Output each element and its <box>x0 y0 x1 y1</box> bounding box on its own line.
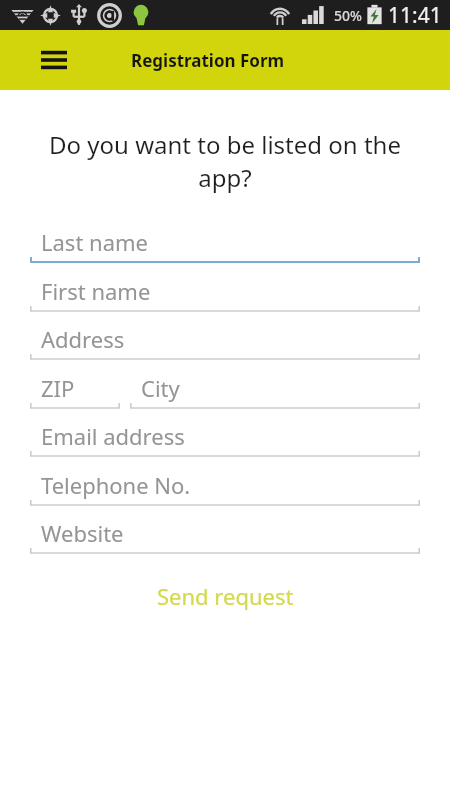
button[interactable]: Address <box>30 319 420 363</box>
staticText: Send request <box>157 581 294 611</box>
staticText: Telephone No. <box>41 470 191 500</box>
staticText: ZIP <box>41 373 75 403</box>
button[interactable]: Send request <box>0 575 450 617</box>
button[interactable]: First name <box>30 271 420 315</box>
staticText: Email address <box>41 421 185 451</box>
button[interactable]: ZIP <box>30 368 120 412</box>
staticText: Registration Form <box>131 49 285 72</box>
staticText: Last name <box>41 227 148 257</box>
button[interactable]: Last name <box>30 222 420 266</box>
button[interactable]: Email address <box>30 416 420 460</box>
staticText: First name <box>41 276 151 306</box>
button[interactable]: Open navigation menu <box>34 40 74 80</box>
button[interactable]: Website <box>30 513 420 557</box>
staticText: 11:41 <box>388 1 442 30</box>
button[interactable]: Telephone No. <box>30 465 420 509</box>
button[interactable]: City <box>130 368 420 412</box>
staticText: Do you want to be listed on the app? <box>42 128 408 194</box>
staticText: City <box>141 373 180 403</box>
staticText: Address <box>41 324 125 354</box>
staticText: Website <box>41 518 124 548</box>
staticText: 50% <box>334 6 362 25</box>
